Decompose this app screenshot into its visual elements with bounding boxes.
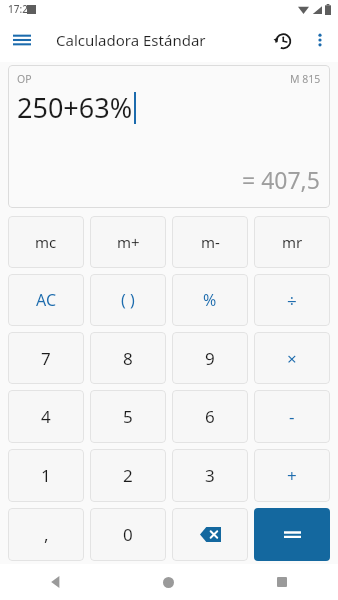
staticText: = 407,5 <box>242 164 320 195</box>
button[interactable]: mc <box>8 216 84 268</box>
button[interactable]: m- <box>172 216 248 268</box>
button[interactable]: History <box>262 20 302 60</box>
button[interactable]: mr <box>254 216 330 268</box>
staticText: ÷ <box>287 289 297 312</box>
button[interactable]: 0 <box>90 508 166 561</box>
button[interactable]: 3 <box>172 449 248 502</box>
staticText: 2 <box>123 464 133 487</box>
staticText: % <box>203 289 217 311</box>
staticText: 4 <box>41 405 51 428</box>
staticText: 6 <box>205 405 215 428</box>
staticText: 8 <box>123 347 133 370</box>
button[interactable]: 2 <box>90 449 166 502</box>
staticText: m- <box>201 232 220 252</box>
button[interactable]: 5 <box>90 390 166 443</box>
staticText: 7 <box>41 347 51 370</box>
button[interactable]: % <box>172 274 248 326</box>
button[interactable]: , <box>8 508 84 561</box>
button[interactable]: OP <box>8 65 330 208</box>
button[interactable]: 8 <box>90 332 166 384</box>
button[interactable] <box>254 508 330 561</box>
staticText: 5 <box>123 405 133 428</box>
button[interactable]: Backspace <box>172 508 248 561</box>
staticText: mr <box>282 232 303 252</box>
staticText: × <box>287 347 297 370</box>
button[interactable]: - <box>254 390 330 443</box>
staticText: M 815 <box>290 72 321 86</box>
staticText: 250+63% <box>17 89 133 126</box>
button[interactable]: Back <box>0 564 112 600</box>
button[interactable]: More options <box>302 22 338 58</box>
button[interactable]: Recent apps <box>225 564 338 600</box>
staticText: 1 <box>41 464 51 487</box>
button[interactable]: × <box>254 332 330 384</box>
staticText: 3 <box>205 464 215 487</box>
button[interactable]: 1 <box>8 449 84 502</box>
button[interactable]: Open navigation menu <box>0 18 44 62</box>
staticText: Calculadora Estándar <box>56 30 206 50</box>
button[interactable]: Home <box>112 564 225 600</box>
staticText: ( ) <box>121 289 135 311</box>
staticText: , <box>44 523 49 546</box>
staticText: - <box>289 405 295 428</box>
button[interactable]: 6 <box>172 390 248 443</box>
staticText: 9 <box>205 347 215 370</box>
staticText: AC <box>36 289 57 311</box>
button[interactable]: 7 <box>8 332 84 384</box>
button[interactable]: + <box>254 449 330 502</box>
staticText: 0 <box>123 523 133 546</box>
staticText: mc <box>35 232 57 252</box>
button[interactable]: 9 <box>172 332 248 384</box>
staticText: m+ <box>117 232 140 252</box>
staticText: 17:2 <box>8 2 28 16</box>
staticText: OP <box>17 72 32 86</box>
button[interactable]: AC <box>8 274 84 326</box>
staticText: + <box>287 464 297 487</box>
button[interactable]: ÷ <box>254 274 330 326</box>
button[interactable]: 4 <box>8 390 84 443</box>
button[interactable]: ( ) <box>90 274 166 326</box>
button[interactable]: m+ <box>90 216 166 268</box>
